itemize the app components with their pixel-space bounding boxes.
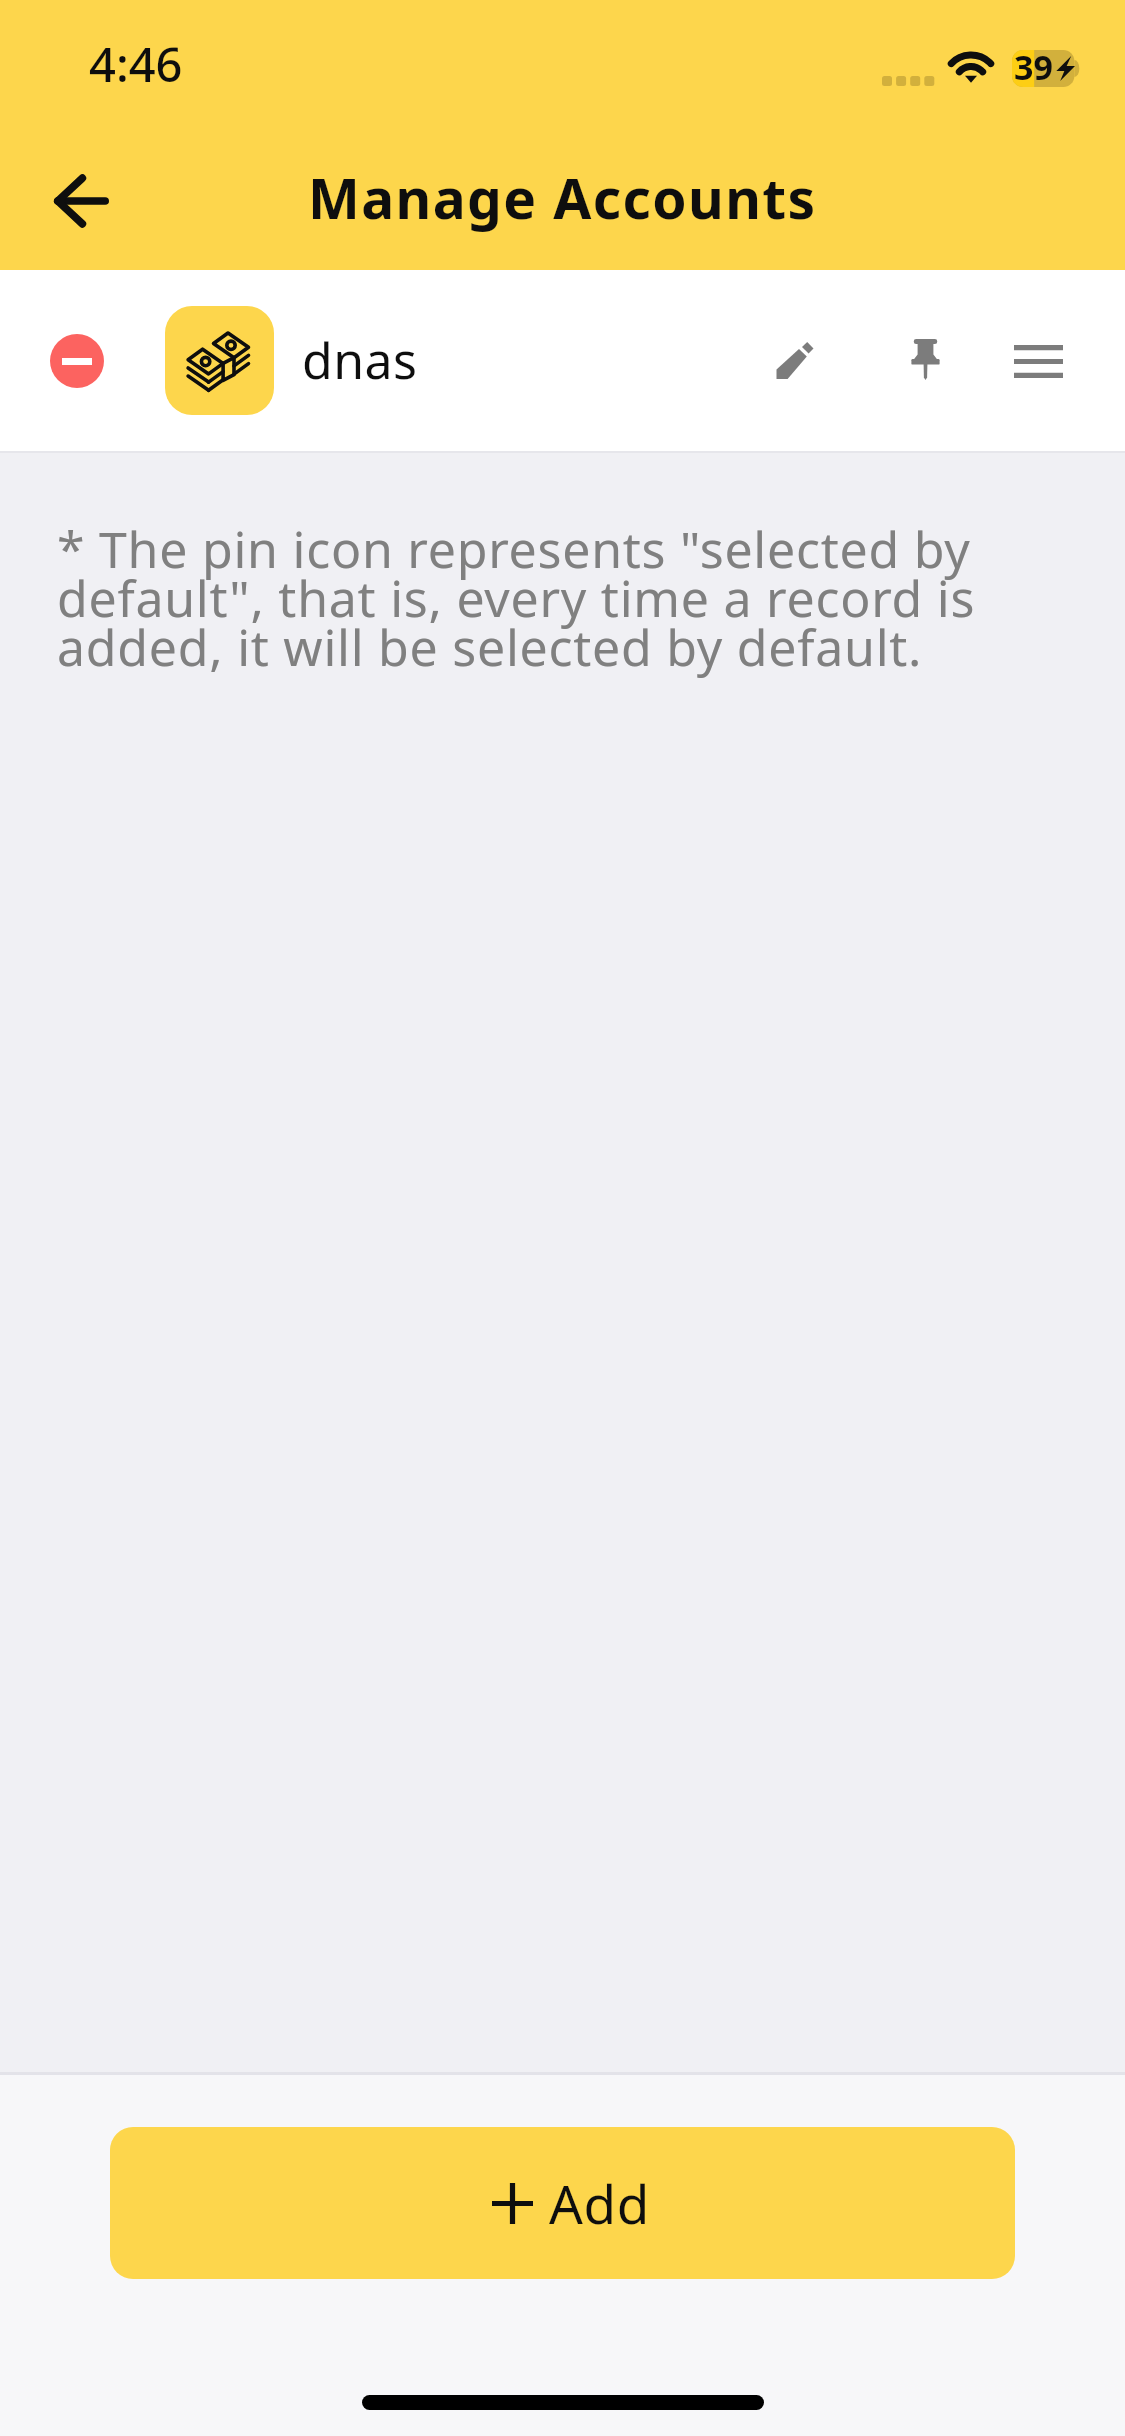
staticText: dnas	[302, 326, 418, 394]
button[interactable]: Remove account	[23, 307, 130, 414]
button[interactable]: Back	[31, 151, 131, 251]
staticText: Add	[549, 2167, 650, 2239]
button[interactable]: Edit	[740, 306, 850, 416]
staticText: * The pin icon represents "selected by d…	[57, 515, 1015, 681]
button[interactable]: Pin as default	[870, 304, 980, 414]
button[interactable]: Reorder	[983, 306, 1093, 416]
staticText: 39	[1014, 44, 1053, 81]
button[interactable]: Add	[110, 2127, 1015, 2279]
staticText: Manage Accounts	[308, 160, 817, 235]
staticText: 4:46	[89, 32, 183, 96]
